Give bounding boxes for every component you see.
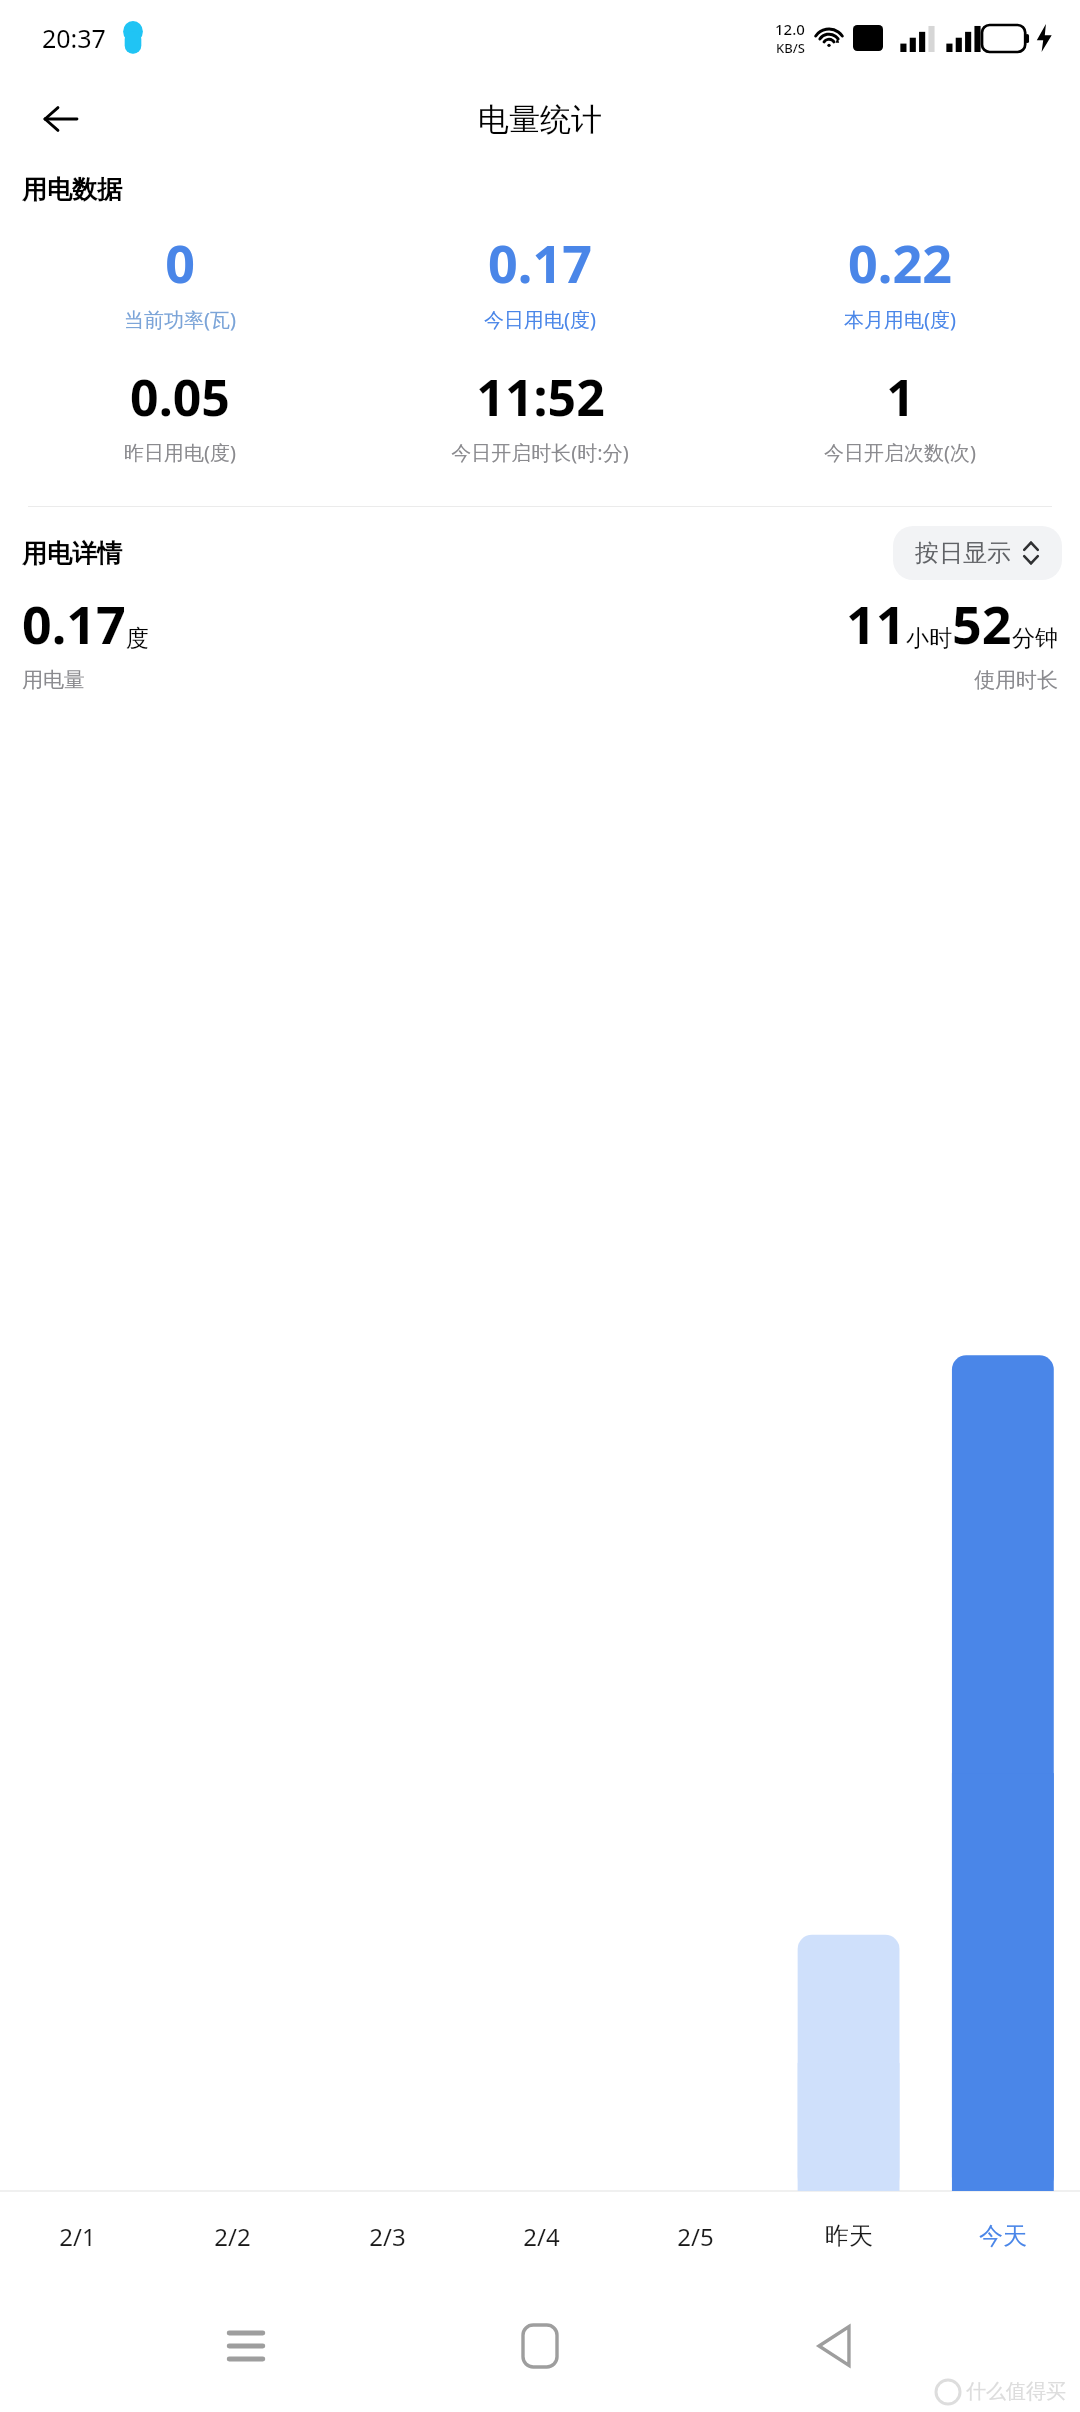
button[interactable]: 2/3: [310, 2192, 464, 2280]
staticText: 使用时长: [974, 667, 1058, 693]
staticText: 用电量: [22, 667, 85, 693]
staticText: 今日用电(度): [484, 306, 596, 333]
staticText: 当前功率(瓦): [124, 306, 236, 333]
button[interactable]: 2/1: [0, 2192, 155, 2280]
staticText: 0.17: [488, 227, 592, 298]
button[interactable]: Back: [30, 88, 92, 150]
staticText: 11:52: [476, 363, 605, 431]
staticText: 0: [165, 227, 195, 298]
button[interactable]: 今天: [926, 2192, 1080, 2280]
button[interactable]: 昨天: [772, 2192, 926, 2280]
staticText: 今日开启次数(次): [824, 439, 976, 466]
staticText: 电量统计: [478, 100, 602, 139]
staticText: 0.17: [22, 588, 126, 659]
staticText: 按日显示: [915, 538, 1011, 568]
staticText: 0.22: [848, 227, 952, 298]
staticText: 分钟: [1012, 624, 1058, 653]
staticText: 什么值得买: [966, 2379, 1066, 2404]
staticText: 小时: [906, 624, 952, 653]
staticText: 0.05: [130, 363, 230, 431]
button[interactable]: 2/4: [464, 2192, 618, 2280]
staticText: 2/4: [523, 2220, 560, 2253]
staticText: 1: [886, 363, 915, 431]
button[interactable]: 2/5: [618, 2192, 772, 2280]
staticText: 52: [952, 588, 1012, 659]
staticText: 用电数据: [22, 174, 122, 205]
staticText: 20:37: [42, 21, 106, 55]
staticText: KB/S: [776, 39, 805, 57]
staticText: 用电详情: [22, 538, 122, 569]
staticText: 11: [846, 588, 906, 659]
staticText: 今天: [979, 2221, 1027, 2251]
staticText: 12.0: [775, 19, 805, 39]
button[interactable]: 2/2: [155, 2192, 310, 2280]
staticText: 2/5: [677, 2220, 714, 2253]
staticText: 昨天: [825, 2221, 873, 2251]
staticText: 本月用电(度): [844, 306, 956, 333]
staticText: 度: [126, 624, 149, 653]
button[interactable]: Back: [786, 2298, 882, 2394]
staticText: 昨日用电(度): [124, 439, 236, 466]
staticText: 今日开启时长(时:分): [451, 439, 629, 466]
button[interactable]: 按日显示: [893, 526, 1062, 580]
staticText: 2/3: [369, 2220, 406, 2253]
staticText: 2/1: [59, 2220, 96, 2253]
staticText: 2/2: [214, 2220, 251, 2253]
button[interactable]: Home: [492, 2298, 588, 2394]
button[interactable]: Recent apps: [198, 2298, 294, 2394]
